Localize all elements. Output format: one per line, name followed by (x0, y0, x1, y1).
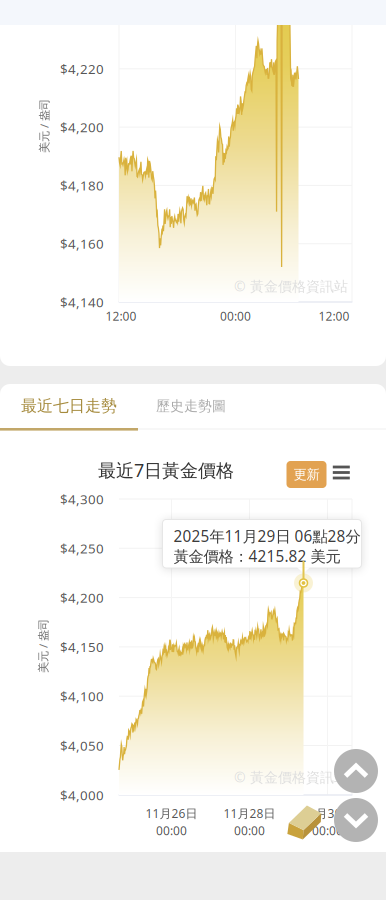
button[interactable]: 最近七日走勢 (0, 384, 138, 431)
staticText: 11月26日 (145, 805, 197, 821)
staticText: $4,200 (60, 588, 104, 607)
staticText: $4,150 (60, 638, 104, 656)
staticText: 12:00 (318, 308, 349, 324)
staticText: 00:00 (312, 822, 343, 839)
staticText: $4,200 (60, 118, 104, 136)
staticText: 00:00 (156, 822, 187, 839)
staticText: 美元 / 盎司 (16, 638, 70, 654)
staticText: $4,180 (60, 176, 104, 194)
staticText: 00:00 (220, 308, 251, 324)
staticText: 2025年11月29日 06點28分 (173, 525, 360, 546)
staticText: © 黃金價格資訊站 (234, 767, 348, 787)
staticText: $4,160 (60, 235, 104, 253)
staticText: 美元 / 盎司 (17, 118, 71, 134)
button[interactable]: Menu (326, 457, 356, 487)
staticText: 最近7日黃金價格 (98, 458, 234, 482)
button[interactable]: Scroll up (334, 749, 378, 793)
staticText: 黃金價格：4215.82 美元 (173, 545, 340, 566)
staticText: $4,300 (60, 490, 104, 508)
staticText: 11月28日 (223, 805, 275, 821)
staticText: 11月30日 (301, 805, 353, 821)
staticText: 12:00 (105, 308, 136, 324)
staticText: $4,000 (60, 786, 104, 804)
staticText: $4,140 (60, 293, 104, 311)
staticText: 歷史走勢圖 (156, 397, 226, 415)
staticText: © 黃金價格資訊站 (234, 276, 348, 296)
staticText: $4,220 (60, 60, 104, 78)
staticText: 更新 (293, 466, 319, 483)
staticText: 00:00 (234, 822, 265, 839)
button[interactable]: Scroll down (334, 798, 378, 842)
staticText: $4,050 (60, 736, 104, 755)
button[interactable]: 歷史走勢圖 (136, 384, 246, 428)
button[interactable]: 更新 (286, 461, 326, 488)
staticText: $4,100 (60, 687, 104, 705)
staticText: $4,250 (60, 539, 104, 557)
staticText: 最近七日走勢 (21, 396, 117, 416)
